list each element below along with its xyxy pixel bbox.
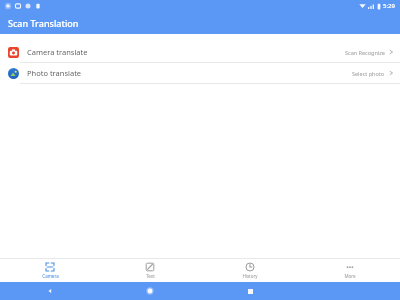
button[interactable]: More <box>300 259 400 282</box>
staticText: 5:29 <box>383 2 395 10</box>
button[interactable]: Home <box>100 282 200 300</box>
staticText: Photo translate <box>27 68 82 78</box>
button[interactable]: History <box>200 259 300 282</box>
staticText: Scan Translation <box>8 17 79 29</box>
button[interactable]: Camera <box>0 259 100 282</box>
staticText: History <box>242 273 258 279</box>
staticText: Select photo <box>352 70 385 77</box>
button[interactable]: Camera translate <box>0 42 400 62</box>
staticText: More <box>344 273 356 279</box>
button[interactable]: Back <box>0 282 100 300</box>
staticText: Camera translate <box>27 47 88 57</box>
staticText: Scan Recognize <box>345 49 385 56</box>
button[interactable]: Text <box>100 259 200 282</box>
staticText: Text <box>146 273 155 279</box>
staticText: Camera <box>42 273 59 279</box>
button[interactable]: Photo translate <box>0 63 400 83</box>
button[interactable]: Recents <box>200 282 300 300</box>
